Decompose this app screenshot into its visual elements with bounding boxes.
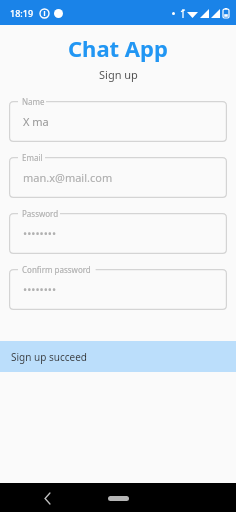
staticText: Confirm password [22, 264, 91, 275]
staticText: Sign up [99, 67, 138, 82]
button[interactable]: Name [9, 95, 227, 142]
button[interactable]: Back [38, 489, 56, 507]
button[interactable]: Email [9, 151, 227, 198]
button[interactable]: Sign up succeed [0, 341, 236, 372]
staticText: Sign up succeed [11, 350, 87, 364]
staticText: 18:19 [10, 7, 34, 19]
staticText: •••••••• [23, 226, 57, 241]
staticText: man.x@mail.com [23, 170, 113, 185]
staticText: Name [22, 96, 45, 107]
staticText: Password [22, 208, 59, 219]
button[interactable]: Password [9, 207, 227, 254]
staticText: Email [22, 152, 43, 163]
button[interactable]: Home [101, 491, 135, 505]
staticText: •••••••• [23, 282, 57, 297]
staticText: Chat App [68, 33, 168, 63]
button[interactable]: Confirm password [9, 263, 227, 310]
staticText: X ma [23, 114, 49, 129]
